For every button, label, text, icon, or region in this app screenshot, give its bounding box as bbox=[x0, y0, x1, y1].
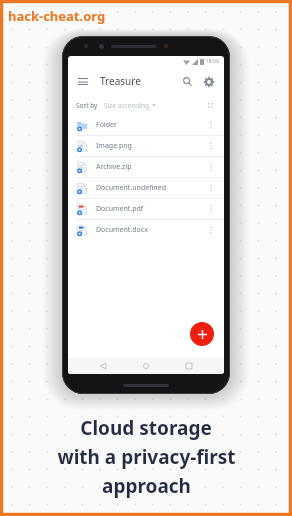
staticText: Image.png bbox=[96, 141, 132, 151]
staticText: 18:09 bbox=[206, 58, 219, 65]
staticText: Sort by bbox=[76, 101, 98, 110]
button[interactable]: Search bbox=[180, 74, 195, 89]
button[interactable]: More options bbox=[206, 225, 216, 235]
button[interactable]: Settings bbox=[201, 74, 216, 89]
staticText: Treasure bbox=[100, 74, 141, 88]
staticText: Document.undefined bbox=[96, 183, 166, 193]
button[interactable]: More options bbox=[206, 204, 216, 214]
staticText: hack-cheat.org bbox=[8, 7, 106, 25]
button[interactable]: Grid view bbox=[204, 99, 216, 111]
button[interactable]: Document.docx bbox=[68, 220, 224, 240]
button[interactable]: Home bbox=[138, 358, 154, 374]
staticText: approach bbox=[102, 473, 191, 499]
button[interactable]: Size ascending bbox=[104, 101, 156, 110]
button[interactable]: More options bbox=[206, 162, 216, 172]
staticText: Archive.zip bbox=[96, 162, 132, 172]
button[interactable]: Recent apps bbox=[181, 358, 197, 374]
button[interactable]: Image.png bbox=[68, 136, 224, 156]
staticText: Folder bbox=[96, 120, 117, 130]
button[interactable]: Archive.zip bbox=[68, 157, 224, 177]
button[interactable]: Folder bbox=[68, 115, 224, 135]
staticText: Cloud storage bbox=[80, 415, 212, 441]
staticText: with a privacy-first bbox=[57, 444, 236, 470]
button[interactable]: More options bbox=[206, 141, 216, 151]
button[interactable]: Document.undefined bbox=[68, 178, 224, 198]
button[interactable]: Menu bbox=[76, 74, 90, 88]
button[interactable]: More options bbox=[206, 183, 216, 193]
staticText: Document.docx bbox=[96, 225, 148, 235]
button[interactable]: Back bbox=[95, 358, 111, 374]
button[interactable]: More options bbox=[206, 120, 216, 130]
button[interactable]: Document.pdf bbox=[68, 199, 224, 219]
staticText: Size ascending bbox=[104, 101, 149, 110]
button[interactable]: Add bbox=[190, 322, 214, 346]
staticText: Document.pdf bbox=[96, 204, 144, 214]
